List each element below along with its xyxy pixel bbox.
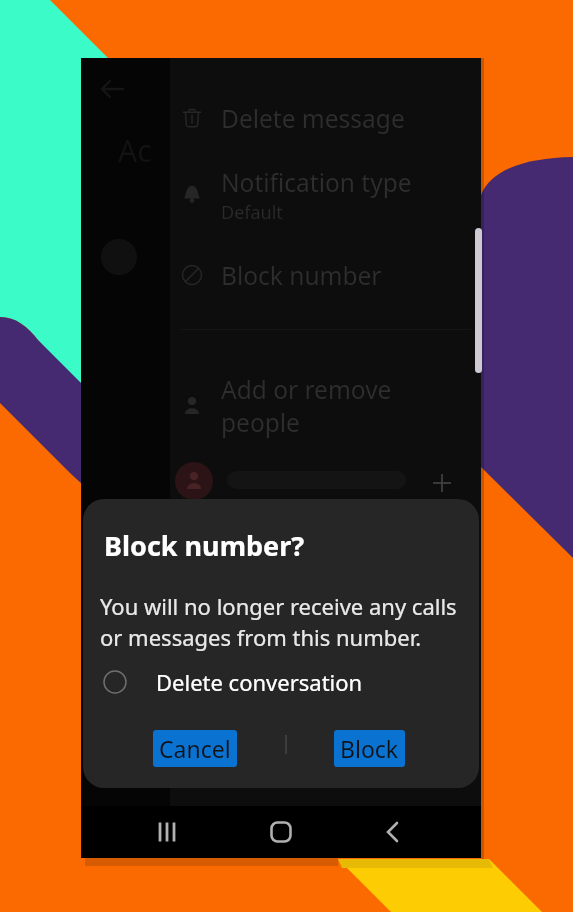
- staticText: or messages from this number.: [100, 622, 422, 652]
- staticText: Ac: [118, 130, 152, 171]
- staticText: Delete conversation: [156, 667, 363, 697]
- button[interactable]: Recent apps: [110, 806, 224, 858]
- button[interactable]: Delete conversation: [83, 659, 479, 705]
- button[interactable]: Add or remove: [170, 371, 481, 441]
- button[interactable]: Block: [334, 730, 405, 767]
- button[interactable]: Back: [338, 806, 452, 858]
- button[interactable]: Cancel: [153, 730, 237, 767]
- staticText: people: [221, 406, 300, 439]
- button[interactable]: Notification type: [221, 166, 412, 225]
- staticText: Default: [221, 200, 283, 225]
- staticText: You will no longer receive any calls: [100, 591, 457, 621]
- staticText: Cancel: [159, 733, 231, 764]
- staticText: Delete message: [221, 102, 405, 135]
- button[interactable]: Block number: [170, 253, 481, 297]
- staticText: Notification type: [221, 166, 412, 199]
- button[interactable]: Home: [224, 806, 338, 858]
- staticText: Block number: [221, 259, 382, 292]
- staticText: Block number?: [104, 527, 305, 564]
- staticText: Block: [340, 733, 399, 764]
- staticText: Add or remove: [221, 373, 392, 406]
- button[interactable]: Delete message: [170, 96, 481, 140]
